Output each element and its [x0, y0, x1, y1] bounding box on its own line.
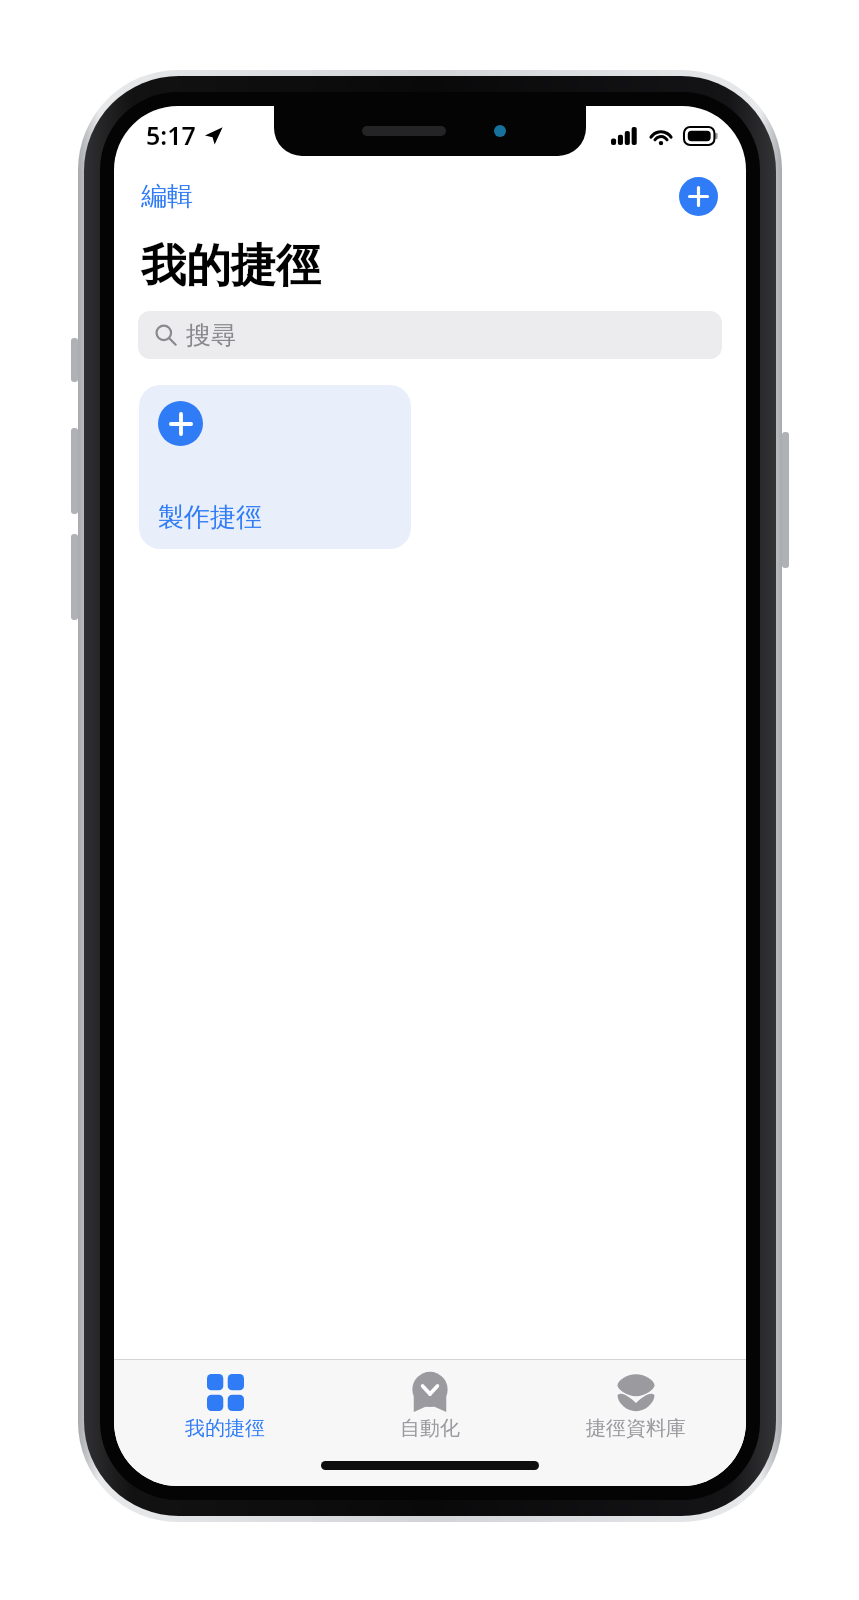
button[interactable]: 搜尋 [138, 311, 722, 359]
staticText: 製作捷徑 [158, 501, 262, 534]
staticText: 我的捷徑 [185, 1416, 265, 1441]
button[interactable]: 製作捷徑 [139, 385, 411, 549]
staticText: 5:17 [146, 118, 196, 152]
button[interactable]: 編輯 [131, 173, 203, 220]
staticText: 我的捷徑 [141, 238, 321, 295]
staticText: 搜尋 [186, 320, 236, 351]
button[interactable]: 新增捷徑 [679, 177, 718, 216]
staticText: 捷徑資料庫 [586, 1416, 686, 1441]
staticText: 編輯 [141, 180, 193, 213]
button[interactable]: 我的捷徑 [130, 1367, 320, 1445]
button[interactable]: 捷徑資料庫 [541, 1367, 731, 1445]
button[interactable]: 自動化 [335, 1367, 525, 1445]
staticText: 自動化 [400, 1416, 460, 1441]
